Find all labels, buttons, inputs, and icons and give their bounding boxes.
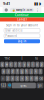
button[interactable]: Cancel xyxy=(0,17,44,21)
button[interactable]: 🔒 xyxy=(10,8,34,12)
staticText: d xyxy=(12,70,14,73)
staticText: ▮▮ ◗ xyxy=(34,1,41,6)
staticText: r xyxy=(15,63,16,66)
staticText: h xyxy=(26,70,28,73)
staticText: Email address xyxy=(5,29,22,32)
staticText: z xyxy=(7,77,8,80)
staticText: g xyxy=(21,70,23,73)
staticText: go xyxy=(38,84,42,87)
staticText: j xyxy=(31,70,32,73)
staticText: m xyxy=(35,77,37,80)
staticText: w xyxy=(6,63,8,66)
staticText: 🌐 xyxy=(8,84,11,87)
staticText: Password xyxy=(5,34,17,38)
staticText: e xyxy=(10,63,12,66)
staticText: k xyxy=(35,70,36,73)
staticText: ⌫ xyxy=(39,77,43,80)
staticText: Continue xyxy=(15,13,29,17)
staticText: p xyxy=(41,63,43,66)
staticText: q xyxy=(1,63,3,66)
staticText: to xyxy=(35,57,38,60)
staticText: a xyxy=(3,70,4,73)
staticText: space xyxy=(20,84,27,87)
staticText: Log in xyxy=(17,39,26,43)
staticText: b xyxy=(26,77,28,80)
button[interactable]: More xyxy=(36,8,39,12)
staticText: c xyxy=(17,77,18,80)
staticText: Sign in to your account xyxy=(6,23,38,27)
button[interactable]: Account xyxy=(5,8,8,12)
staticText: 123 xyxy=(1,84,7,87)
staticText: example.com xyxy=(16,8,32,12)
staticText: 9:41 xyxy=(3,1,10,6)
staticText: f xyxy=(17,70,18,73)
staticText: s xyxy=(8,70,9,73)
staticText: ⋮ xyxy=(36,8,40,12)
staticText: ⇧ xyxy=(2,77,4,80)
staticText: x xyxy=(12,77,13,80)
staticText: u xyxy=(28,63,30,66)
staticText: y xyxy=(24,63,25,66)
staticText: n xyxy=(30,77,32,80)
button[interactable]: Continue xyxy=(0,13,44,17)
staticText: Cancel xyxy=(17,18,27,21)
staticText: t xyxy=(19,63,20,66)
staticText: i xyxy=(32,63,33,66)
staticText: l xyxy=(40,70,41,73)
staticText: o xyxy=(36,63,38,66)
staticText: 🔒 xyxy=(12,8,15,11)
staticText: “the” xyxy=(4,57,10,60)
button[interactable]: Log in xyxy=(4,39,40,43)
